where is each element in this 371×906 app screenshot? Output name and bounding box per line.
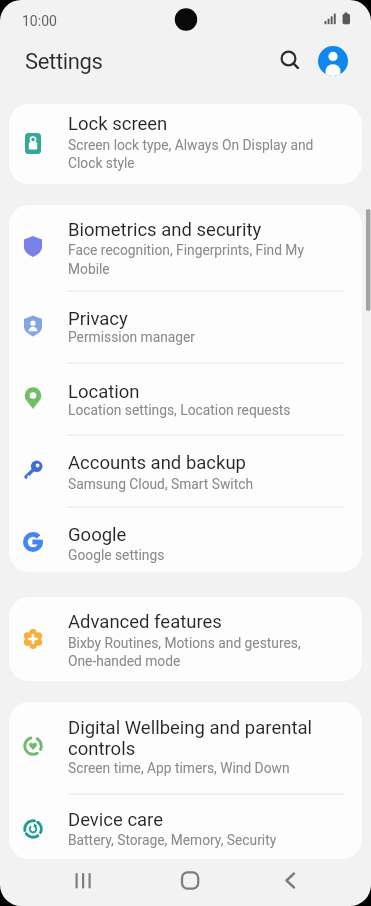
- staticText: Advanced features: [68, 611, 222, 633]
- staticText: Privacy: [68, 308, 128, 330]
- button[interactable]: [9, 794, 362, 860]
- staticText: Location: [68, 381, 140, 403]
- staticText: Samsung Cloud, Smart Switch: [68, 476, 254, 492]
- staticText: Accounts and backup: [68, 452, 246, 474]
- staticText: Mobile: [68, 261, 110, 277]
- staticText: controls: [68, 738, 136, 760]
- button[interactable]: [40, 859, 126, 906]
- button[interactable]: [318, 46, 348, 76]
- staticText: Biometrics and security: [68, 219, 262, 241]
- staticText: Google: [68, 524, 127, 546]
- button[interactable]: [9, 363, 362, 435]
- staticText: Screen time, App timers, Wind Down: [68, 760, 290, 776]
- staticText: 10:00: [22, 13, 57, 29]
- staticText: Clock style: [68, 155, 135, 171]
- button[interactable]: [9, 507, 362, 573]
- button[interactable]: [9, 104, 362, 184]
- staticText: Device care: [68, 809, 164, 831]
- staticText: Lock screen: [68, 113, 168, 135]
- button[interactable]: [9, 702, 362, 794]
- staticText: One-handed mode: [68, 653, 181, 669]
- button[interactable]: [9, 435, 362, 507]
- button[interactable]: [274, 44, 304, 74]
- button[interactable]: [250, 859, 336, 906]
- button[interactable]: [9, 291, 362, 363]
- staticText: Face recognition, Fingerprints, Find My: [68, 242, 304, 258]
- button[interactable]: [9, 597, 362, 681]
- staticText: Permission manager: [68, 329, 196, 345]
- button[interactable]: [9, 205, 362, 291]
- staticText: Battery, Storage, Memory, Security: [68, 832, 277, 848]
- button[interactable]: [147, 859, 233, 906]
- staticText: Bixby Routines, Motions and gestures,: [68, 635, 301, 651]
- staticText: Settings: [25, 49, 103, 75]
- staticText: Digital Wellbeing and parental: [68, 717, 313, 739]
- staticText: Google settings: [68, 547, 165, 563]
- staticText: Location settings, Location requests: [68, 402, 291, 418]
- staticText: Screen lock type, Always On Display and: [68, 137, 314, 153]
